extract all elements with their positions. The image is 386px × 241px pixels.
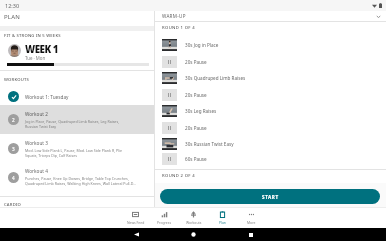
button[interactable]: Recents — [222, 228, 279, 241]
staticText: WARM-UP — [162, 13, 186, 19]
staticText: Tue · Mon — [25, 55, 46, 61]
staticText: 20s Pause — [185, 92, 207, 98]
staticText: Plan — [219, 220, 226, 225]
staticText: 30s Russian Twist Easy — [185, 141, 234, 147]
button[interactable]: 20s Pause — [155, 119, 386, 136]
staticText: 20s Pause — [185, 59, 207, 65]
button[interactable]: 20s Pause — [155, 53, 386, 70]
staticText: 30s Quadruped Limb Raises — [185, 75, 246, 81]
button[interactable]: 60s Pause — [155, 151, 386, 167]
button[interactable]: 30s Jog in Place — [155, 37, 386, 53]
staticText: More — [247, 220, 256, 225]
button[interactable]: WARM-UP — [155, 11, 386, 21]
button[interactable]: 30s Quadruped Limb Raises — [155, 70, 386, 86]
staticText: Workout 2 — [25, 111, 48, 117]
staticText: Workouts — [186, 220, 202, 225]
button[interactable]: 4 — [0, 163, 154, 191]
button[interactable]: More — [237, 207, 266, 228]
button[interactable]: 2 — [0, 105, 154, 134]
button[interactable]: Progress — [150, 207, 179, 228]
staticText: 12:30 — [5, 2, 20, 9]
button[interactable]: Home — [165, 228, 222, 241]
staticText: START — [262, 194, 279, 200]
staticText: Workout 4 — [25, 168, 48, 174]
staticText: 2 — [12, 117, 15, 123]
staticText: ROUND 2 OF 4 — [162, 173, 196, 179]
staticText: 30s Leg Raises — [185, 108, 217, 114]
staticText: WORKOUTS — [4, 77, 30, 83]
staticText: 20s Pause — [185, 125, 207, 131]
button[interactable]: News Feed — [121, 207, 150, 228]
staticText: 4 — [12, 175, 15, 181]
staticText: FIT & STRONG IN 5 WEEKS — [4, 33, 61, 39]
staticText: 3 — [12, 146, 15, 152]
button[interactable]: Back — [108, 228, 165, 241]
button[interactable]: 20s Pause — [155, 86, 386, 103]
staticText: Jog in Place, Pause, Quadruped Limb Rais… — [25, 119, 120, 129]
staticText: Workout 3 — [25, 140, 48, 146]
staticText: Punches, Pause, Knee Up Downs, Bridge, T… — [25, 176, 137, 186]
staticText: 30s Jog in Place — [185, 42, 219, 48]
button[interactable]: Workouts — [179, 207, 208, 228]
staticText: News Feed — [127, 220, 145, 225]
button[interactable]: START — [160, 189, 380, 204]
button[interactable]: 30s Leg Raises — [155, 103, 386, 119]
staticText: Mod. Low Side Plank L, Pause, Mod. Low S… — [25, 148, 123, 158]
staticText: Workout 1: Tuesday — [25, 94, 69, 100]
staticText: ROUND 1 OF 4 — [162, 25, 196, 31]
button[interactable]: Plan — [208, 207, 237, 228]
button[interactable]: 3 — [0, 134, 154, 163]
staticText: Progress — [157, 220, 172, 225]
staticText: PLAN — [4, 13, 20, 21]
staticText: CARDIO — [4, 202, 22, 207]
staticText: 60s Pause — [185, 156, 207, 162]
other: Collapse — [376, 14, 381, 19]
staticText: WEEK 1 — [25, 43, 58, 56]
button[interactable]: Workout 1: Tuesday — [0, 88, 154, 105]
button[interactable]: 30s Russian Twist Easy — [155, 136, 386, 151]
